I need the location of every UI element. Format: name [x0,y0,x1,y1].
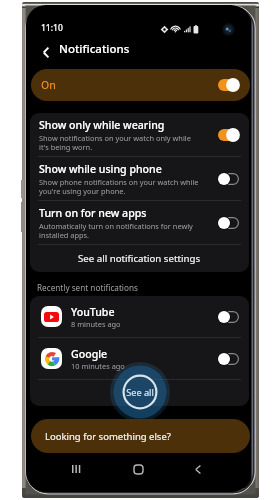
staticText: Google [71,347,108,361]
staticText: 10 minutes ago [71,361,125,371]
staticText: 8 minutes ago [71,319,121,329]
button[interactable]: Show only while wearing [30,113,249,156]
button[interactable]: Toggle on [218,79,239,91]
button[interactable]: Looking for something else? [31,419,250,453]
button[interactable]: Toggle off [218,311,239,323]
button[interactable]: Show while using phone [30,157,249,200]
button[interactable]: On [31,69,250,101]
button[interactable]: YouTube [30,296,249,337]
staticText: See all notification settings [78,252,201,265]
staticText: Show while using phone [39,162,162,176]
staticText: Turn on for new apps [39,206,147,220]
staticText: See all [124,386,156,399]
button[interactable]: Back [184,455,212,483]
button[interactable]: Home [124,455,152,483]
staticText: 11:10 [41,22,63,34]
staticText: Show phone notifications on your watch w… [39,177,199,196]
staticText: Notifications [59,41,130,57]
staticText: YouTube [71,305,115,319]
staticText: Looking for something else? [45,430,171,443]
staticText: Show notifications on your watch only wh… [39,133,191,152]
button[interactable]: Recents [62,455,90,483]
staticText: Automatically turn on notifications for … [39,221,193,240]
button[interactable]: Back [33,39,59,65]
button[interactable]: Toggle off [218,217,239,229]
button[interactable]: Toggle off [218,353,239,365]
button[interactable]: Google [30,338,249,379]
button[interactable]: See all [109,361,171,423]
staticText: On [41,78,56,92]
button[interactable]: Toggle off [218,173,239,185]
staticText: Show only while wearing [39,118,165,132]
button[interactable]: See all notification settings [30,245,249,272]
staticText: Recently sent notifications [37,282,138,293]
button[interactable]: Toggle on [218,129,239,141]
button[interactable]: Turn on for new apps [30,201,249,244]
